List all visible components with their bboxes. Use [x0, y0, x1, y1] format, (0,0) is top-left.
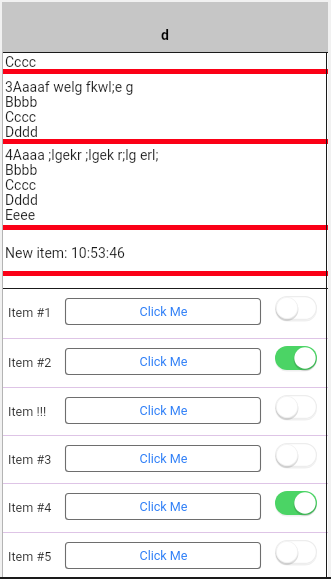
staticText: Click Me — [139, 451, 188, 466]
staticText: Item #4 — [8, 500, 65, 515]
button[interactable]: Switch off — [275, 296, 317, 320]
button[interactable]: Click Me — [65, 348, 261, 375]
button[interactable]: Switch on — [275, 491, 317, 515]
button[interactable]: Switch off — [275, 395, 317, 419]
staticText: New item: 10:53:46 — [5, 245, 125, 261]
staticText: Click Me — [139, 403, 188, 418]
staticText: Click Me — [139, 548, 188, 563]
button[interactable]: Click Me — [65, 445, 261, 472]
button[interactable]: Switch on — [275, 346, 317, 370]
staticText: 3Aaaaf welg fkwl;e g Bbbb Cccc Dddd — [5, 79, 134, 141]
button[interactable]: Switch off — [275, 443, 317, 467]
staticText: d — [161, 27, 169, 43]
staticText: 4Aaaa ;lgekr ;lgek r;lg erl; Bbbb Cccc D… — [5, 147, 159, 224]
button[interactable]: Click Me — [65, 397, 261, 424]
staticText: Item #2 — [8, 355, 65, 370]
button[interactable]: Switch off — [275, 540, 317, 564]
staticText: Item !!! — [8, 404, 65, 419]
staticText: Cccc — [5, 54, 37, 70]
staticText: Item #5 — [8, 549, 65, 564]
staticText: Click Me — [139, 354, 188, 369]
button[interactable]: Click Me — [65, 493, 261, 520]
staticText: Item #1 — [8, 305, 65, 320]
staticText: Item #3 — [8, 452, 65, 467]
button[interactable]: Click Me — [65, 542, 261, 569]
staticText: Click Me — [139, 304, 188, 319]
button[interactable]: Click Me — [65, 298, 261, 325]
staticText: Click Me — [139, 499, 188, 514]
